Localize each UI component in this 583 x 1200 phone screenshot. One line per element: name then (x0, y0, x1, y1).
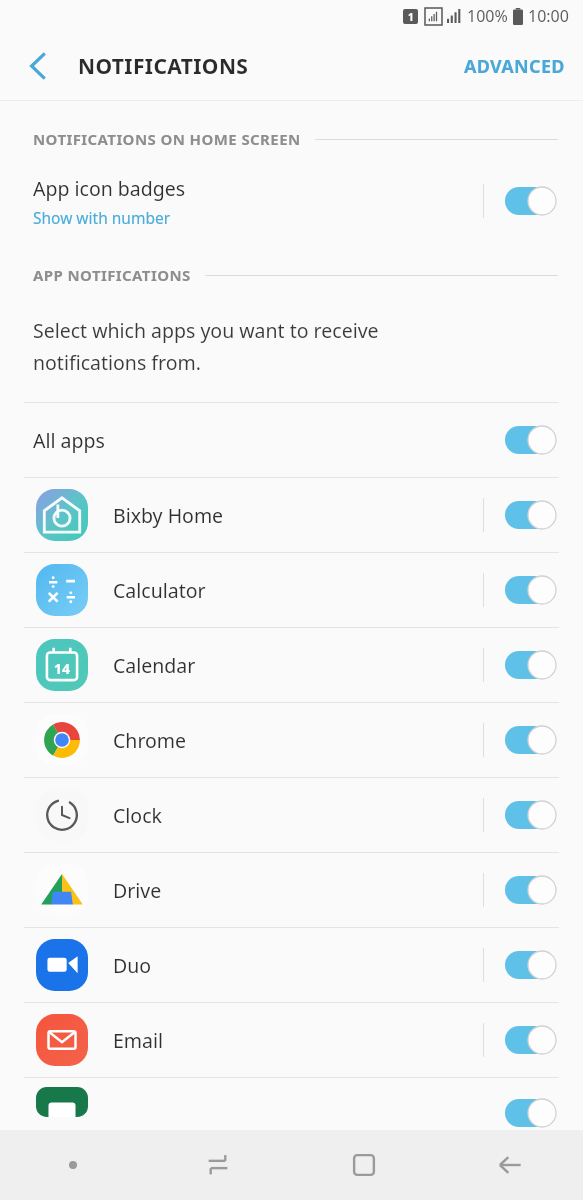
staticText: Duo (113, 952, 152, 979)
staticText: Bixby Home (113, 502, 224, 529)
staticText: Calculator (113, 577, 206, 604)
button[interactable]: Back (14, 42, 62, 90)
staticText: All apps (33, 427, 105, 454)
button[interactable]: Recents (145, 1130, 291, 1200)
button[interactable]: Chrome (0, 703, 583, 777)
button[interactable]: ADVANCED (446, 40, 583, 93)
staticText: Drive (113, 877, 162, 904)
staticText: Show with number (33, 207, 171, 228)
button[interactable]: Menu indicator (0, 1130, 145, 1200)
button[interactable]: Clock (0, 778, 583, 852)
staticText: App icon badges (33, 175, 186, 202)
staticText: ADVANCED (464, 54, 565, 79)
staticText: Chrome (113, 727, 187, 754)
staticText: 14 (54, 659, 71, 678)
staticText: NOTIFICATIONS ON HOME SCREEN (33, 129, 301, 149)
staticText: Email (113, 1027, 164, 1054)
staticText: 100% (467, 5, 508, 27)
button[interactable]: All apps (0, 403, 583, 477)
button[interactable] (0, 1078, 583, 1108)
staticText: Select which apps you want to receive no… (33, 317, 379, 376)
button[interactable]: 14 (0, 628, 583, 702)
button[interactable]: Duo (0, 928, 583, 1002)
staticText: 1 (408, 10, 414, 24)
button[interactable]: Calculator (0, 553, 583, 627)
staticText: 10:00 (528, 5, 569, 27)
staticText: NOTIFICATIONS (78, 52, 249, 81)
button[interactable]: Bixby Home (0, 478, 583, 552)
button[interactable]: Drive (0, 853, 583, 927)
button[interactable]: Back (437, 1130, 583, 1200)
button[interactable]: Home (291, 1130, 437, 1200)
button[interactable]: Email (0, 1003, 583, 1077)
staticText: Calendar (113, 652, 196, 679)
staticText: Clock (113, 802, 162, 829)
button[interactable]: App icon badges (0, 155, 583, 247)
staticText: APP NOTIFICATIONS (33, 265, 191, 285)
